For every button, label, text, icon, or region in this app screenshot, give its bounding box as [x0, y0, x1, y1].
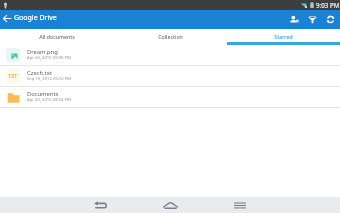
staticText: Starred [274, 33, 293, 40]
button[interactable]: Recent apps [210, 197, 270, 213]
button[interactable]: Documents [0, 87, 340, 107]
button[interactable]: Add people [285, 10, 303, 29]
staticText: Apr 20, 2015 08:54 PM [27, 97, 71, 103]
staticText: Sep 10, 2012 05:52 PM [27, 76, 72, 82]
staticText: 9:03 PM [316, 1, 340, 9]
staticText: All documents [39, 33, 75, 40]
staticText: Apr 20, 2015 09:00 PM [27, 55, 71, 61]
button[interactable]: Filter [303, 10, 321, 29]
button[interactable]: TXT [0, 66, 340, 86]
staticText: Documents [27, 90, 59, 98]
button[interactable]: Home [140, 197, 200, 213]
button[interactable]: Starred [227, 29, 340, 45]
staticText: Dream.png [27, 48, 58, 56]
staticText: Czech.txt [27, 69, 52, 77]
staticText: Google Drive [14, 13, 57, 23]
button[interactable]: Back [0, 10, 13, 29]
button[interactable]: Dream.png [0, 45, 340, 65]
button[interactable]: Back [70, 197, 130, 213]
button[interactable]: Refresh [321, 10, 340, 29]
button[interactable]: All documents [0, 29, 114, 45]
staticText: TXT [8, 73, 18, 80]
staticText: Collection [158, 33, 183, 40]
button[interactable]: Collection [114, 29, 227, 45]
